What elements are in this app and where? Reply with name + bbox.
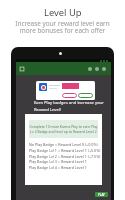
staticText: Complete 10 more Karma Play to earn Play… [29,124,98,134]
button[interactable]: PLAY [95,192,108,197]
staticText: Increase your reward level earn more bon… [15,19,110,35]
staticText: No Play Badge = Reward Level 0 (+0.0%) [29,142,98,147]
button[interactable] [36,81,95,100]
staticText: Play Badge Lvl 4 = Reward Level 1 (+12.5… [29,165,102,171]
staticText: Earn Play badges and increase your Rewar… [34,100,104,112]
staticText: Play Badge Lvl 3 = Reward Level 1 (+10.0… [29,159,102,165]
staticText: PLAY [98,193,105,197]
staticText: Level Up [44,6,82,19]
staticText: Play Badge Lvl 2 = Reward Level 1 (+7.5%… [29,154,101,159]
staticText: Play Badge Lvl 1 = Reward Level 1 (+5.0%… [29,148,101,153]
